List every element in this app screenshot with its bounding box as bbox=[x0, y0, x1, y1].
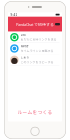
button[interactable]: Close bbox=[55, 23, 60, 25]
staticText: このリンクをコピーする bbox=[20, 60, 53, 64]
staticText: しおり bbox=[20, 55, 29, 59]
button[interactable]: しおり bbox=[8, 54, 62, 65]
button[interactable]: ルームをつくる bbox=[8, 105, 62, 118]
button[interactable]: Twitter bbox=[8, 43, 62, 54]
staticText: LINE bbox=[20, 33, 25, 37]
staticText: PandaChat で招待する bbox=[16, 21, 54, 27]
staticText: 9:41 bbox=[10, 12, 17, 17]
staticText: 友だちに招待リンクを送る bbox=[20, 37, 56, 41]
staticText: Twitter bbox=[20, 44, 28, 48]
button[interactable]: LINE bbox=[8, 32, 62, 43]
staticText: ルームをつくる bbox=[17, 109, 52, 115]
staticText: タイムラインに投稿する bbox=[20, 48, 53, 53]
